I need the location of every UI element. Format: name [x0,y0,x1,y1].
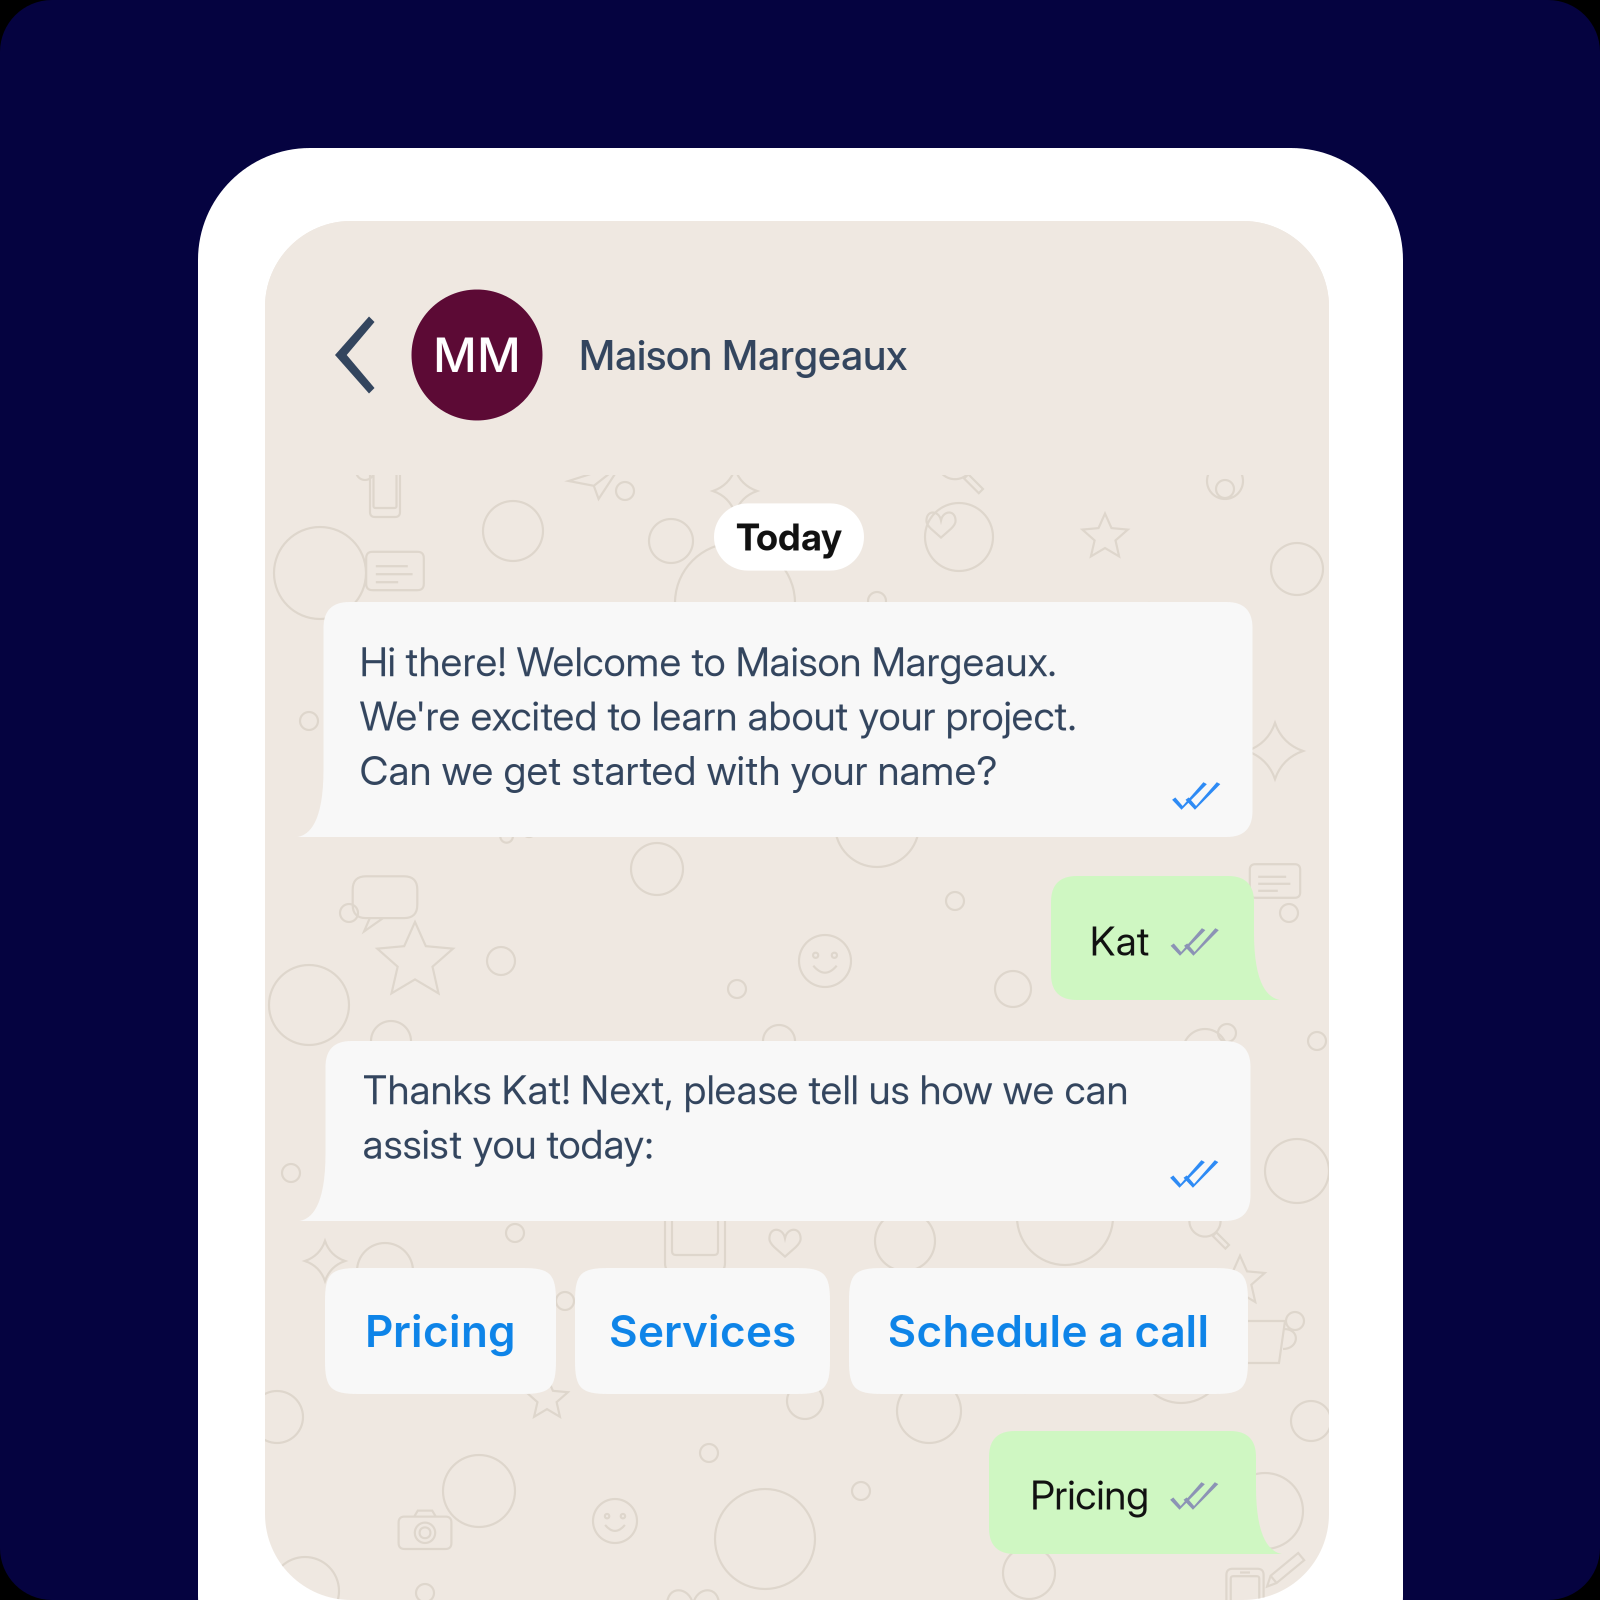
staticText: Can we get started with your name? [359,746,997,795]
staticText: We're excited to learn about your projec… [359,692,1076,740]
staticText: Services [609,1304,796,1358]
staticText: Schedule a call [887,1304,1209,1358]
button[interactable]: Back [327,316,374,393]
button[interactable]: Services [575,1268,830,1394]
staticText: Pricing [1030,1471,1149,1519]
staticText: Hi there! Welcome to Maison Margeaux. [359,637,1056,686]
staticText: Thanks Kat! Next, please tell us how we … [362,1066,1128,1114]
button[interactable]: Pricing [325,1268,556,1394]
staticText: assist you today: [362,1120,653,1168]
staticText: MM [433,326,521,384]
staticText: Kat [1090,917,1150,965]
button[interactable]: Schedule a call [849,1268,1248,1394]
staticText: Today [736,514,842,560]
staticText: Maison Margeaux [579,330,907,380]
staticText: Pricing [365,1304,516,1358]
